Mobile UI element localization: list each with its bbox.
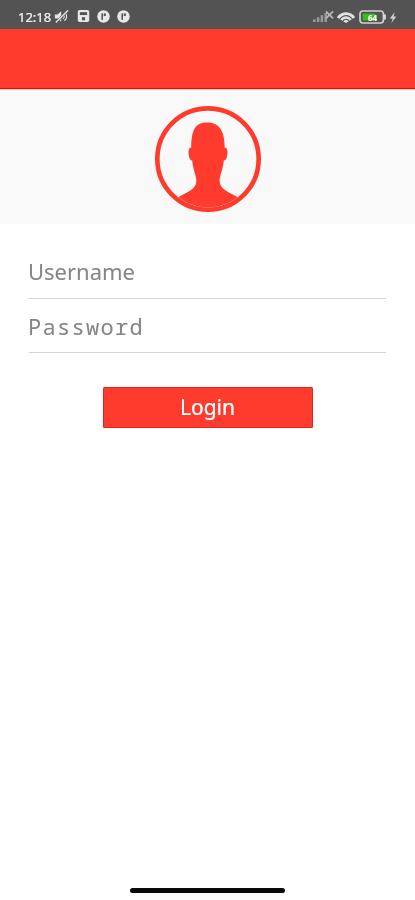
button[interactable]: Login: [104, 388, 312, 427]
staticText: Username: [28, 256, 136, 286]
staticText: 12:18: [18, 8, 52, 26]
staticText: 64: [368, 12, 378, 23]
button[interactable]: Username: [0, 250, 415, 286]
staticText: Login: [180, 393, 236, 422]
staticText: Password: [28, 311, 145, 341]
button[interactable]: Password: [0, 305, 415, 341]
button[interactable]: Profile avatar: [155, 106, 261, 212]
